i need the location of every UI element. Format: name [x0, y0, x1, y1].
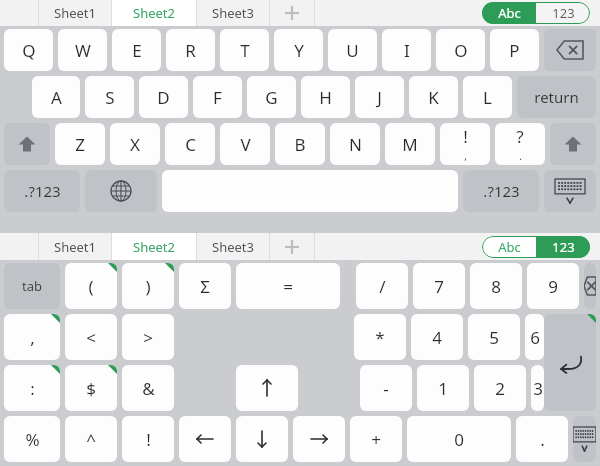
button[interactable]: Arrow right — [293, 416, 345, 462]
button[interactable]: C — [165, 123, 215, 165]
button[interactable]: P — [490, 29, 539, 71]
button[interactable]: Abc — [482, 2, 536, 24]
staticText: S — [105, 86, 115, 109]
button[interactable]: ^ — [65, 416, 117, 462]
button[interactable]: I — [382, 29, 431, 71]
staticText: N — [349, 133, 362, 156]
button[interactable]: . — [516, 416, 568, 462]
button[interactable]: V — [220, 123, 270, 165]
button[interactable]: Add sheet — [270, 233, 314, 260]
button[interactable]: * — [354, 314, 406, 360]
button[interactable]: : — [4, 365, 60, 411]
button[interactable]: Q — [4, 29, 53, 71]
staticText: / — [379, 275, 386, 298]
button[interactable]: > — [122, 314, 174, 360]
button[interactable]: M — [385, 123, 435, 165]
button[interactable]: $ — [65, 365, 117, 411]
button[interactable]: Add sheet — [270, 0, 314, 26]
button[interactable]: .?123 — [4, 170, 80, 212]
button[interactable]: Arrow down — [236, 416, 288, 462]
button[interactable]: 5 — [468, 314, 520, 360]
staticText: E — [132, 39, 142, 62]
button[interactable]: Hide keyboard — [573, 416, 596, 462]
button[interactable]: 0 — [407, 416, 511, 462]
button[interactable]: 123 — [536, 236, 590, 258]
button[interactable]: H — [301, 76, 350, 118]
button[interactable]: E — [112, 29, 161, 71]
button[interactable]: A — [32, 76, 80, 118]
button[interactable]: 2 — [474, 365, 526, 411]
button[interactable]: T — [220, 29, 269, 71]
button[interactable]: K — [409, 76, 458, 118]
button[interactable]: U — [328, 29, 377, 71]
button[interactable]: Sheet2 — [112, 233, 196, 260]
button[interactable]: Shift — [550, 123, 596, 165]
button[interactable]: % — [4, 416, 60, 462]
button[interactable]: Arrow up — [236, 365, 298, 411]
staticText: 7 — [434, 275, 444, 298]
button[interactable]: Sheet3 — [197, 0, 269, 26]
button[interactable]: ) — [122, 263, 174, 309]
button[interactable]: tab — [4, 263, 60, 309]
button[interactable]: W — [58, 29, 107, 71]
button[interactable]: R — [166, 29, 215, 71]
button[interactable]: D — [139, 76, 188, 118]
button[interactable]: = — [236, 263, 340, 309]
button[interactable]: G — [247, 76, 296, 118]
button[interactable]: Sheet2 — [112, 0, 196, 26]
button[interactable]: O — [436, 29, 485, 71]
button[interactable]: / — [356, 263, 408, 309]
button[interactable]: 7 — [413, 263, 465, 309]
button[interactable]: Sheet1 — [39, 0, 111, 26]
button[interactable]: Abc — [482, 236, 536, 258]
staticText: return — [534, 87, 579, 107]
button[interactable]: Sheet3 — [197, 233, 269, 260]
button[interactable]: Change keyboard — [85, 170, 157, 212]
button[interactable]: & — [122, 365, 174, 411]
button[interactable]: + — [350, 416, 402, 462]
staticText: 6 — [530, 326, 540, 349]
button[interactable]: .?123 — [463, 170, 539, 212]
button[interactable]: Σ — [179, 263, 231, 309]
button[interactable]: N — [330, 123, 380, 165]
button[interactable]: Return — [544, 314, 596, 411]
button[interactable]: Backspace — [584, 263, 596, 309]
staticText: 5 — [489, 326, 499, 349]
button[interactable]: 4 — [411, 314, 463, 360]
button[interactable]: , — [4, 314, 60, 360]
button[interactable]: ( — [65, 263, 117, 309]
staticText: I — [404, 39, 410, 62]
button[interactable]: ? — [495, 123, 545, 165]
button[interactable]: return — [517, 76, 596, 118]
button[interactable]: Shift — [4, 123, 50, 165]
button[interactable]: ! — [440, 123, 490, 165]
button[interactable]: J — [355, 76, 404, 118]
button[interactable]: 9 — [527, 263, 579, 309]
button[interactable]: Backspace — [544, 29, 596, 71]
button[interactable]: Arrow left — [179, 416, 231, 462]
button[interactable]: 6 — [525, 314, 544, 360]
button[interactable]: Y — [274, 29, 323, 71]
button[interactable]: L — [463, 76, 512, 118]
button[interactable]: 8 — [470, 263, 522, 309]
button[interactable]: S — [85, 76, 134, 118]
button[interactable]: Z — [55, 123, 105, 165]
staticText: tab — [22, 277, 42, 295]
button[interactable]: B — [275, 123, 325, 165]
button[interactable]: 1 — [417, 365, 469, 411]
button[interactable]: < — [65, 314, 117, 360]
staticText: R — [185, 39, 196, 62]
staticText: ! — [463, 125, 468, 148]
button[interactable]: Sheet1 — [39, 233, 111, 260]
button[interactable]: F — [193, 76, 242, 118]
button[interactable]: - — [360, 365, 412, 411]
button[interactable]: ! — [122, 416, 174, 462]
staticText: P — [509, 39, 520, 62]
staticText: Q — [22, 39, 36, 62]
button[interactable]: Hide keyboard — [544, 170, 596, 212]
button[interactable]: X — [110, 123, 160, 165]
staticText: Sheet1 — [54, 238, 96, 256]
button[interactable]: 3 — [531, 365, 544, 411]
button[interactable]: 123 — [536, 2, 590, 24]
